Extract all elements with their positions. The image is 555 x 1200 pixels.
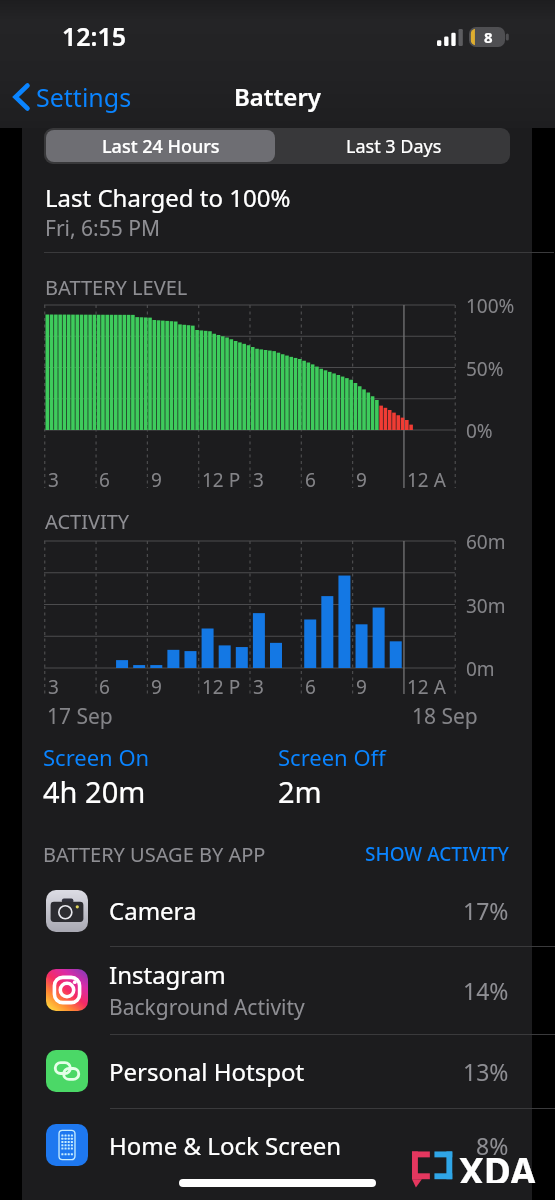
staticText: 17 Sep [47,702,113,731]
staticText: 13% [463,1056,509,1087]
button[interactable]: Personal Hotspot [22,1034,532,1108]
staticText: Home & Lock Screen [109,1129,342,1162]
staticText: 12 A [407,674,446,700]
staticText: 100% [466,293,515,319]
staticText: BATTERY USAGE BY APP [43,841,266,868]
staticText: Fri, 6:55 PM [45,214,160,243]
button[interactable]: Last 24 Hours [46,130,275,162]
staticText: 6 [99,674,110,700]
staticText: 6 [305,674,316,700]
staticText: Camera [109,894,197,927]
staticText: 12 P [202,674,241,700]
staticText: 12:15 [62,19,127,53]
button[interactable]: SHOW ACTIVITY [365,841,509,867]
staticText: 6 [305,467,316,493]
button[interactable]: Camera [22,875,532,946]
staticText: 4h 20m [43,772,146,811]
button[interactable]: Last 3 Days [277,128,510,164]
staticText: 14% [463,975,509,1006]
staticText: Battery [234,80,321,113]
staticText: 0% [466,418,493,444]
staticText: 9 [151,674,162,700]
staticText: BATTERY LEVEL [45,274,188,301]
staticText: 6 [99,467,110,493]
staticText: Background Activity [109,993,305,1022]
staticText: 60m [466,529,506,555]
staticText: 9 [356,467,367,493]
staticText: 18 Sep [412,702,478,731]
staticText: 17% [463,895,509,926]
staticText: 2m [278,772,322,811]
staticText: Last 3 Days [346,134,442,159]
staticText: Personal Hotspot [109,1055,305,1088]
staticText: 12 P [202,467,241,493]
staticText: 3 [48,674,59,700]
button[interactable]: Screen Off [278,742,386,772]
staticText: Instagram [109,958,226,991]
button[interactable]: Screen On [43,742,150,772]
staticText: Settings [36,80,132,114]
button[interactable]: Instagram [22,946,532,1034]
staticText: 30m [466,593,506,619]
staticText: ACTIVITY [45,508,130,535]
staticText: 12 A [407,467,446,493]
staticText: 9 [151,467,162,493]
staticText: 9 [356,674,367,700]
staticText: 50% [466,356,504,382]
staticText: XDA [459,1145,536,1183]
staticText: 0m [466,656,495,682]
staticText: 8% [476,1130,509,1161]
staticText: Last 24 Hours [102,134,220,159]
staticText: 3 [253,467,264,493]
button[interactable]: Home & Lock Screen [22,1108,532,1182]
staticText: Last Charged to 100% [45,181,291,214]
staticText: 3 [48,467,59,493]
button[interactable]: Settings [1,74,144,120]
staticText: 3 [253,674,264,700]
staticText: 8 [484,27,493,47]
